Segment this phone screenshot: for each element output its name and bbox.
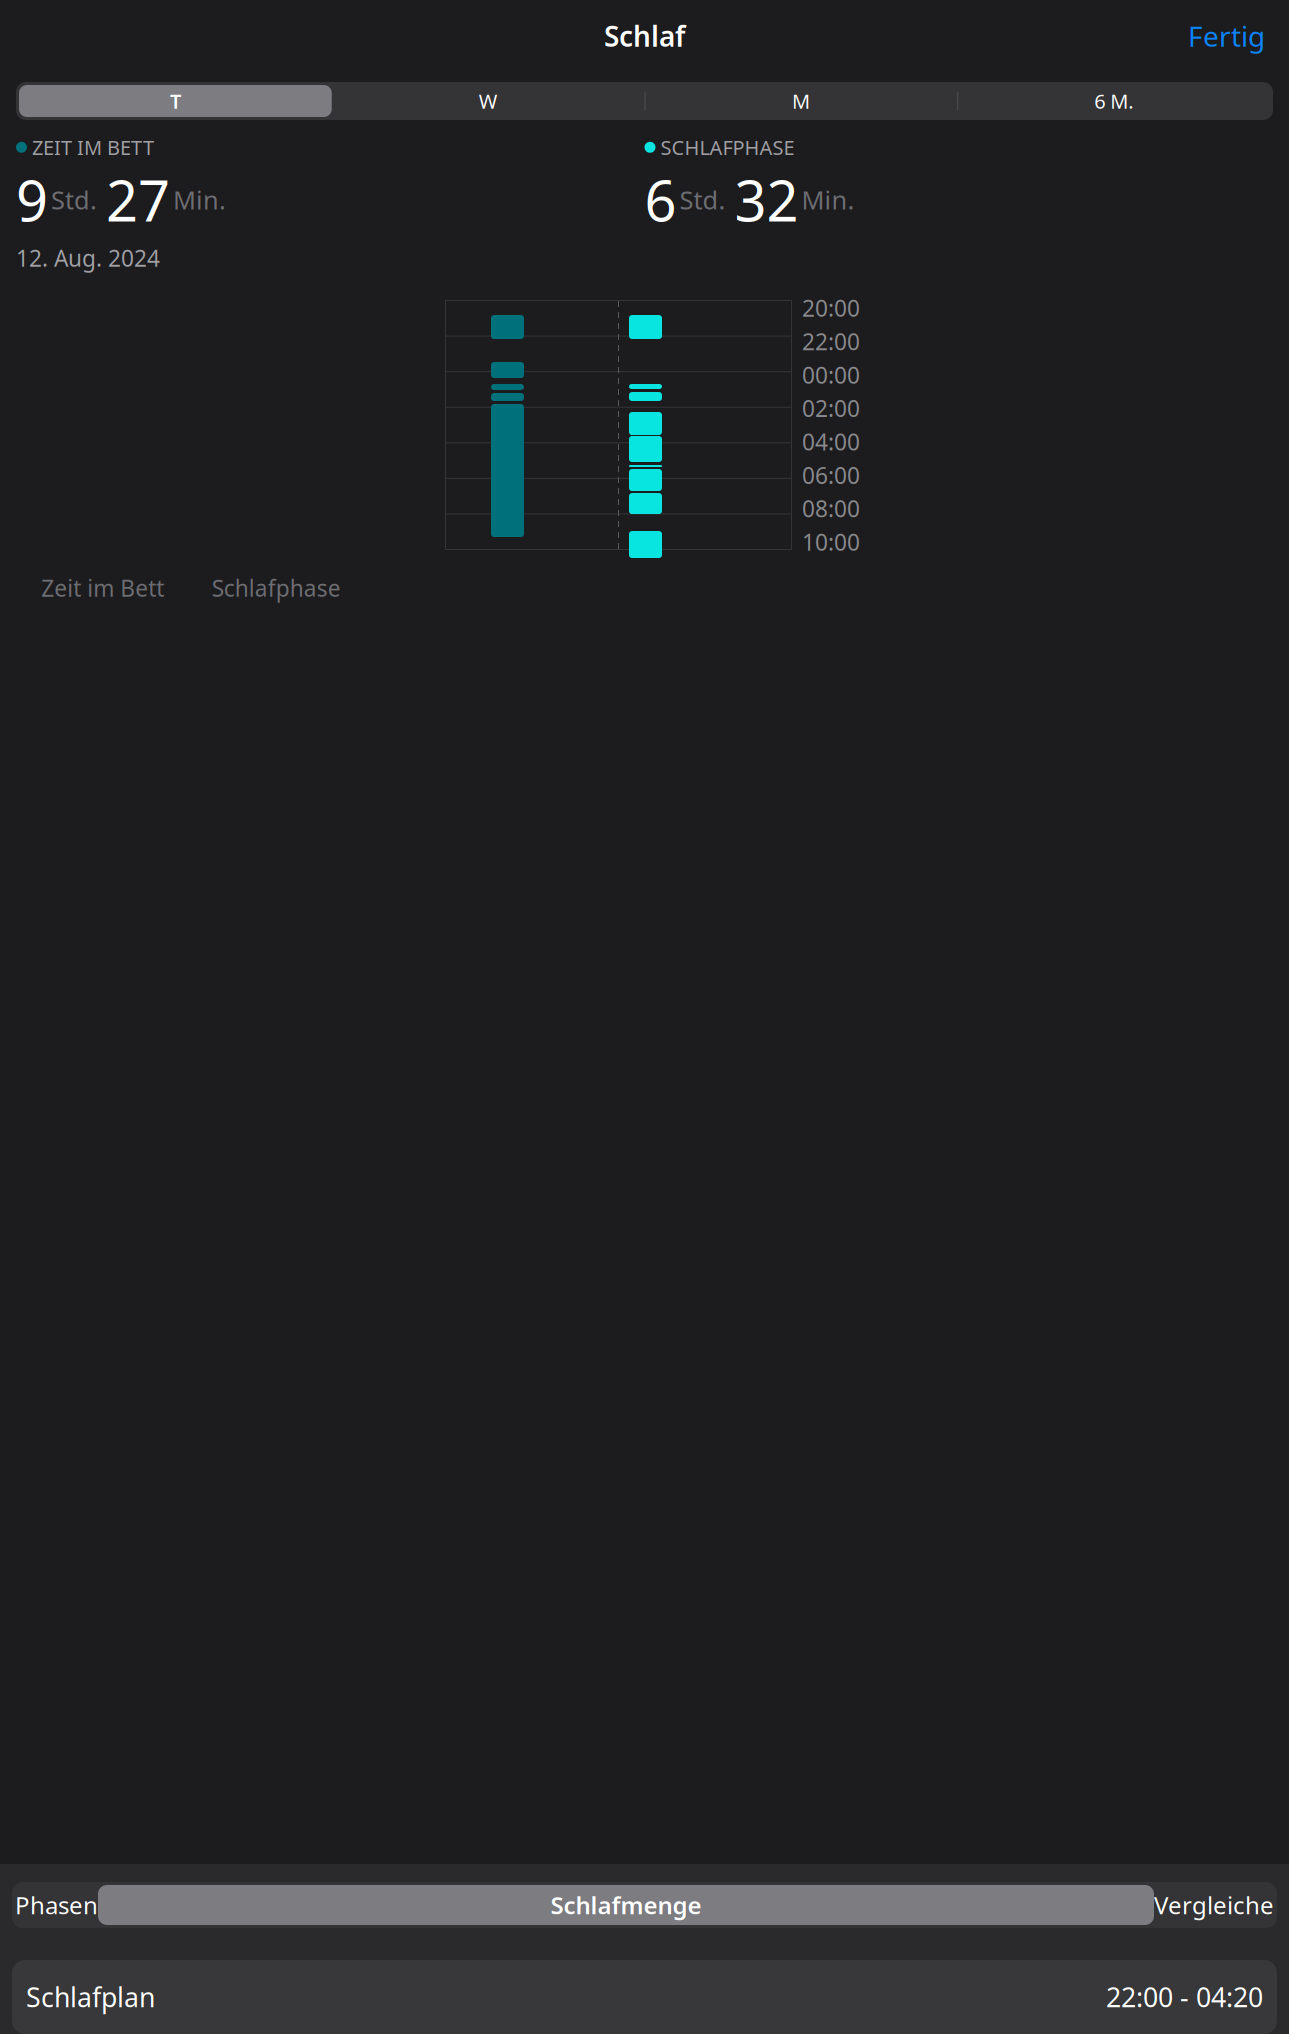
staticText: 02:00	[802, 393, 860, 423]
staticText: 08:00	[802, 493, 860, 524]
staticText: 9	[16, 163, 48, 237]
staticText: 00:00	[802, 360, 860, 390]
staticText: Std.	[679, 183, 725, 216]
staticText: Schlafmenge	[550, 1889, 701, 1921]
staticText: Vergleiche	[1154, 1889, 1274, 1921]
button[interactable]: Schlafmenge	[98, 1885, 1154, 1925]
staticText: Min.	[173, 183, 226, 216]
button[interactable]: T	[19, 85, 332, 117]
staticText: 12. Aug. 2024	[16, 243, 160, 273]
staticText: SCHLAFPHASE	[660, 134, 794, 161]
staticText: 04:00	[802, 427, 860, 457]
staticText: 27	[106, 163, 170, 237]
staticText: Fertig	[1188, 17, 1265, 55]
staticText: W	[479, 88, 498, 114]
staticText: 6	[644, 163, 676, 237]
button[interactable]: M	[644, 85, 957, 117]
button[interactable]: 6 M.	[957, 85, 1270, 117]
staticText: 32	[734, 163, 798, 237]
staticText: Std.	[51, 183, 97, 216]
staticText: 10:00	[802, 527, 860, 557]
staticText: Zeit im Bett	[41, 573, 164, 603]
staticText: Schlafphase	[212, 573, 341, 603]
staticText: 06:00	[802, 460, 860, 490]
button[interactable]: W	[332, 85, 645, 117]
button[interactable]: Schlafplan	[12, 1960, 1277, 2034]
staticText: ZEIT IM BETT	[32, 134, 154, 161]
staticText: Schlaf	[604, 17, 685, 55]
staticText: Schlafplan	[26, 1979, 155, 2015]
button[interactable]: Vergleiche	[1154, 1885, 1274, 1925]
staticText: 22:00	[802, 326, 860, 356]
staticText: 20:00	[802, 293, 860, 323]
staticText: Min.	[801, 183, 854, 216]
staticText: 22:00 - 04:20	[1106, 1979, 1263, 2015]
button[interactable]: Phasen	[15, 1885, 98, 1925]
staticText: T	[170, 88, 181, 114]
staticText: Phasen	[15, 1889, 98, 1921]
staticText: 6 M.	[1094, 88, 1133, 114]
button[interactable]: Fertig	[1182, 9, 1271, 63]
staticText: M	[792, 88, 810, 114]
